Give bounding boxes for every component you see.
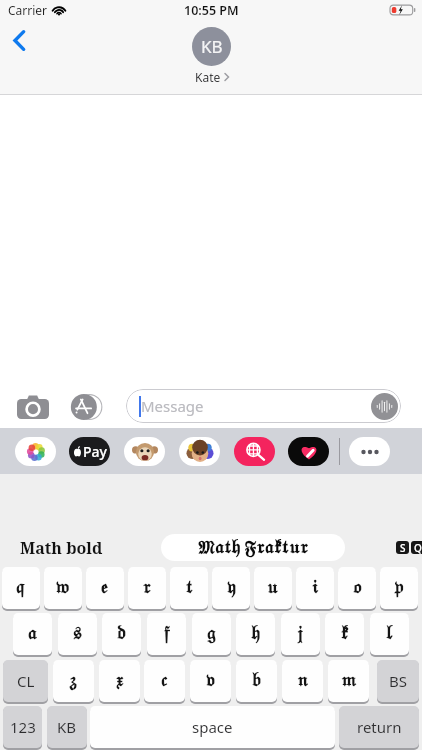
staticText: Carrier <box>8 2 48 18</box>
button[interactable]: Camera <box>11 384 55 424</box>
button[interactable]: 𝔳 <box>190 660 231 702</box>
button[interactable]: Photos <box>15 437 56 466</box>
button[interactable]: Audio message <box>371 393 398 420</box>
staticText: 𝔱 <box>186 579 193 597</box>
button[interactable]: Q <box>411 541 422 554</box>
button[interactable]: Message <box>126 389 401 423</box>
staticText: CL <box>17 671 35 691</box>
button[interactable]: Memoji stickers <box>179 437 220 466</box>
button[interactable]: KB <box>47 706 87 748</box>
staticText: 𝔟 <box>252 672 262 690</box>
staticText: 𝔩 <box>386 625 394 643</box>
staticText: 𝔮 <box>16 579 26 597</box>
staticText: 𝔴 <box>56 579 70 597</box>
staticText: 𝔧 <box>297 625 304 643</box>
staticText: 𝔪 <box>341 672 357 690</box>
staticText: KB <box>57 717 77 737</box>
button[interactable]: S <box>396 541 409 554</box>
button[interactable]: 𝔐𝔞𝔱𝔥 𝔉𝔯𝔞𝔨𝔱𝔲𝔯 <box>161 534 345 561</box>
staticText: 𝔳 <box>206 672 216 690</box>
staticText: 𝔥 <box>251 625 261 643</box>
staticText: KB <box>201 35 223 58</box>
button[interactable]: 𝔴 <box>44 567 82 609</box>
staticText: BS <box>389 671 407 691</box>
staticText: Kate <box>195 69 221 85</box>
staticText: 𝔯 <box>143 579 152 597</box>
button[interactable]: 𝔢 <box>86 567 124 609</box>
button[interactable]: 𝔭 <box>380 567 418 609</box>
button[interactable]: 𝔩 <box>370 613 409 655</box>
staticText: 123 <box>10 717 36 737</box>
button[interactable]: 𝔣 <box>147 613 186 655</box>
button[interactable]: Memoji <box>124 437 165 466</box>
staticText: Q <box>414 541 422 554</box>
staticText: return <box>357 717 402 737</box>
button[interactable]: Apple Pay <box>69 437 110 466</box>
staticText: 𝔲 <box>267 579 279 597</box>
button[interactable]: 𝔧 <box>281 613 320 655</box>
button[interactable]: 𝔮 <box>2 567 40 609</box>
staticText: space <box>192 717 233 737</box>
staticText: 𝔤 <box>207 625 216 643</box>
staticText: Message <box>141 396 204 416</box>
button[interactable]: 𝔟 <box>236 660 277 702</box>
staticText: 𝔠 <box>161 672 168 690</box>
staticText: 𝔣 <box>164 625 170 643</box>
staticText: 𝔬 <box>353 579 362 597</box>
button[interactable]: 𝔶 <box>212 567 250 609</box>
staticText: 𝔰 <box>73 625 83 643</box>
button[interactable]: KB <box>192 27 231 85</box>
button[interactable]: 123 <box>3 706 42 748</box>
button[interactable]: Math bold <box>20 534 103 561</box>
staticText: S <box>400 541 406 554</box>
button[interactable]: App Store <box>64 384 108 424</box>
button[interactable]: 𝔱 <box>170 567 208 609</box>
staticText: 𝔷 <box>69 672 78 690</box>
button[interactable]: Back <box>4 25 34 55</box>
staticText: 𝔐𝔞𝔱𝔥 𝔉𝔯𝔞𝔨𝔱𝔲𝔯 <box>198 539 309 557</box>
button[interactable]: 𝔲 <box>254 567 292 609</box>
staticText: Math bold <box>20 537 103 559</box>
staticText: 10:55 PM <box>184 2 239 19</box>
button[interactable]: More <box>349 437 390 466</box>
button[interactable]: 𝔷 <box>53 660 94 702</box>
button[interactable]: 𝔫 <box>282 660 323 702</box>
staticText: 𝔦 <box>312 579 319 597</box>
staticText: 𝔶 <box>227 579 236 597</box>
button[interactable]: 𝔥 <box>236 613 275 655</box>
button[interactable]: space <box>90 706 335 748</box>
staticText: 𝔵 <box>116 672 124 690</box>
staticText: 𝔨 <box>341 625 349 643</box>
staticText: 𝔫 <box>297 672 309 690</box>
staticText: 𝔢 <box>101 579 109 597</box>
button[interactable]: 𝔦 <box>296 567 334 609</box>
button[interactable]: 𝔤 <box>192 613 231 655</box>
staticText: 𝔡 <box>117 625 126 643</box>
button[interactable]: 𝔪 <box>328 660 369 702</box>
staticText: Pay <box>83 442 107 461</box>
staticText: 𝔭 <box>394 579 404 597</box>
button[interactable]: BS <box>377 660 419 702</box>
button[interactable]: return <box>339 706 419 748</box>
button[interactable]: 𝔬 <box>338 567 376 609</box>
button[interactable]: 𝔵 <box>99 660 140 702</box>
button[interactable]: 𝔨 <box>325 613 364 655</box>
button[interactable]: 𝔰 <box>58 613 97 655</box>
button[interactable]: 𝔯 <box>128 567 166 609</box>
button[interactable]: 𝔠 <box>144 660 185 702</box>
button[interactable]: Images <box>234 437 275 466</box>
button[interactable]: 𝔞 <box>13 613 52 655</box>
button[interactable]: CL <box>3 660 48 702</box>
button[interactable]: Digital Touch <box>288 437 329 466</box>
staticText: 𝔞 <box>28 625 38 643</box>
button[interactable]: 𝔡 <box>102 613 141 655</box>
